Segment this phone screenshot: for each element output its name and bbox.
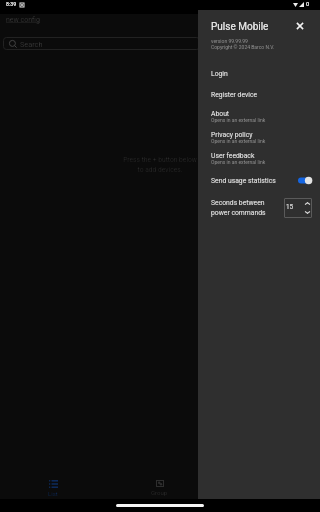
staticText: Copyright © 2024 Barco N.V. (211, 44, 275, 50)
staticText: version 99.99.99 (211, 38, 248, 44)
button[interactable]: Send usage statistics (198, 171, 320, 190)
staticText: Register device (211, 91, 258, 99)
button[interactable]: new config (6, 16, 40, 24)
staticText: Opens in an external link (211, 159, 266, 165)
button[interactable]: About (198, 110, 320, 126)
staticText: Privacy policy (211, 131, 253, 139)
staticText: List (48, 490, 58, 497)
staticText: Pulse Mobile (211, 21, 269, 33)
staticText: Search (20, 40, 43, 49)
staticText: Login (211, 70, 228, 78)
button[interactable]: Register device (198, 91, 320, 101)
staticText: 15 (286, 203, 294, 211)
staticText: User feedback (211, 152, 255, 160)
staticText: Group (151, 489, 168, 496)
staticText: About (211, 110, 230, 118)
staticText: 8:39 (6, 1, 17, 7)
button[interactable]: Close drawer (292, 18, 308, 34)
button[interactable]: Group (106, 472, 213, 499)
staticText: Press the + button below to add devices. (123, 156, 197, 174)
button[interactable]: Seconds between power commands (284, 198, 312, 218)
button[interactable]: List (0, 472, 106, 499)
staticText: Opens in an external link (211, 138, 266, 144)
button[interactable]: Login (198, 70, 320, 80)
button[interactable]: Search (3, 37, 200, 50)
staticText: new config (6, 16, 40, 24)
staticText: Seconds between power commands (211, 199, 266, 216)
staticText: 0 (306, 1, 310, 8)
button[interactable]: Privacy policy (198, 131, 320, 147)
staticText: Opens in an external link (211, 117, 266, 123)
button[interactable]: User feedback (198, 152, 320, 168)
staticText: Send usage statistics (211, 177, 276, 185)
